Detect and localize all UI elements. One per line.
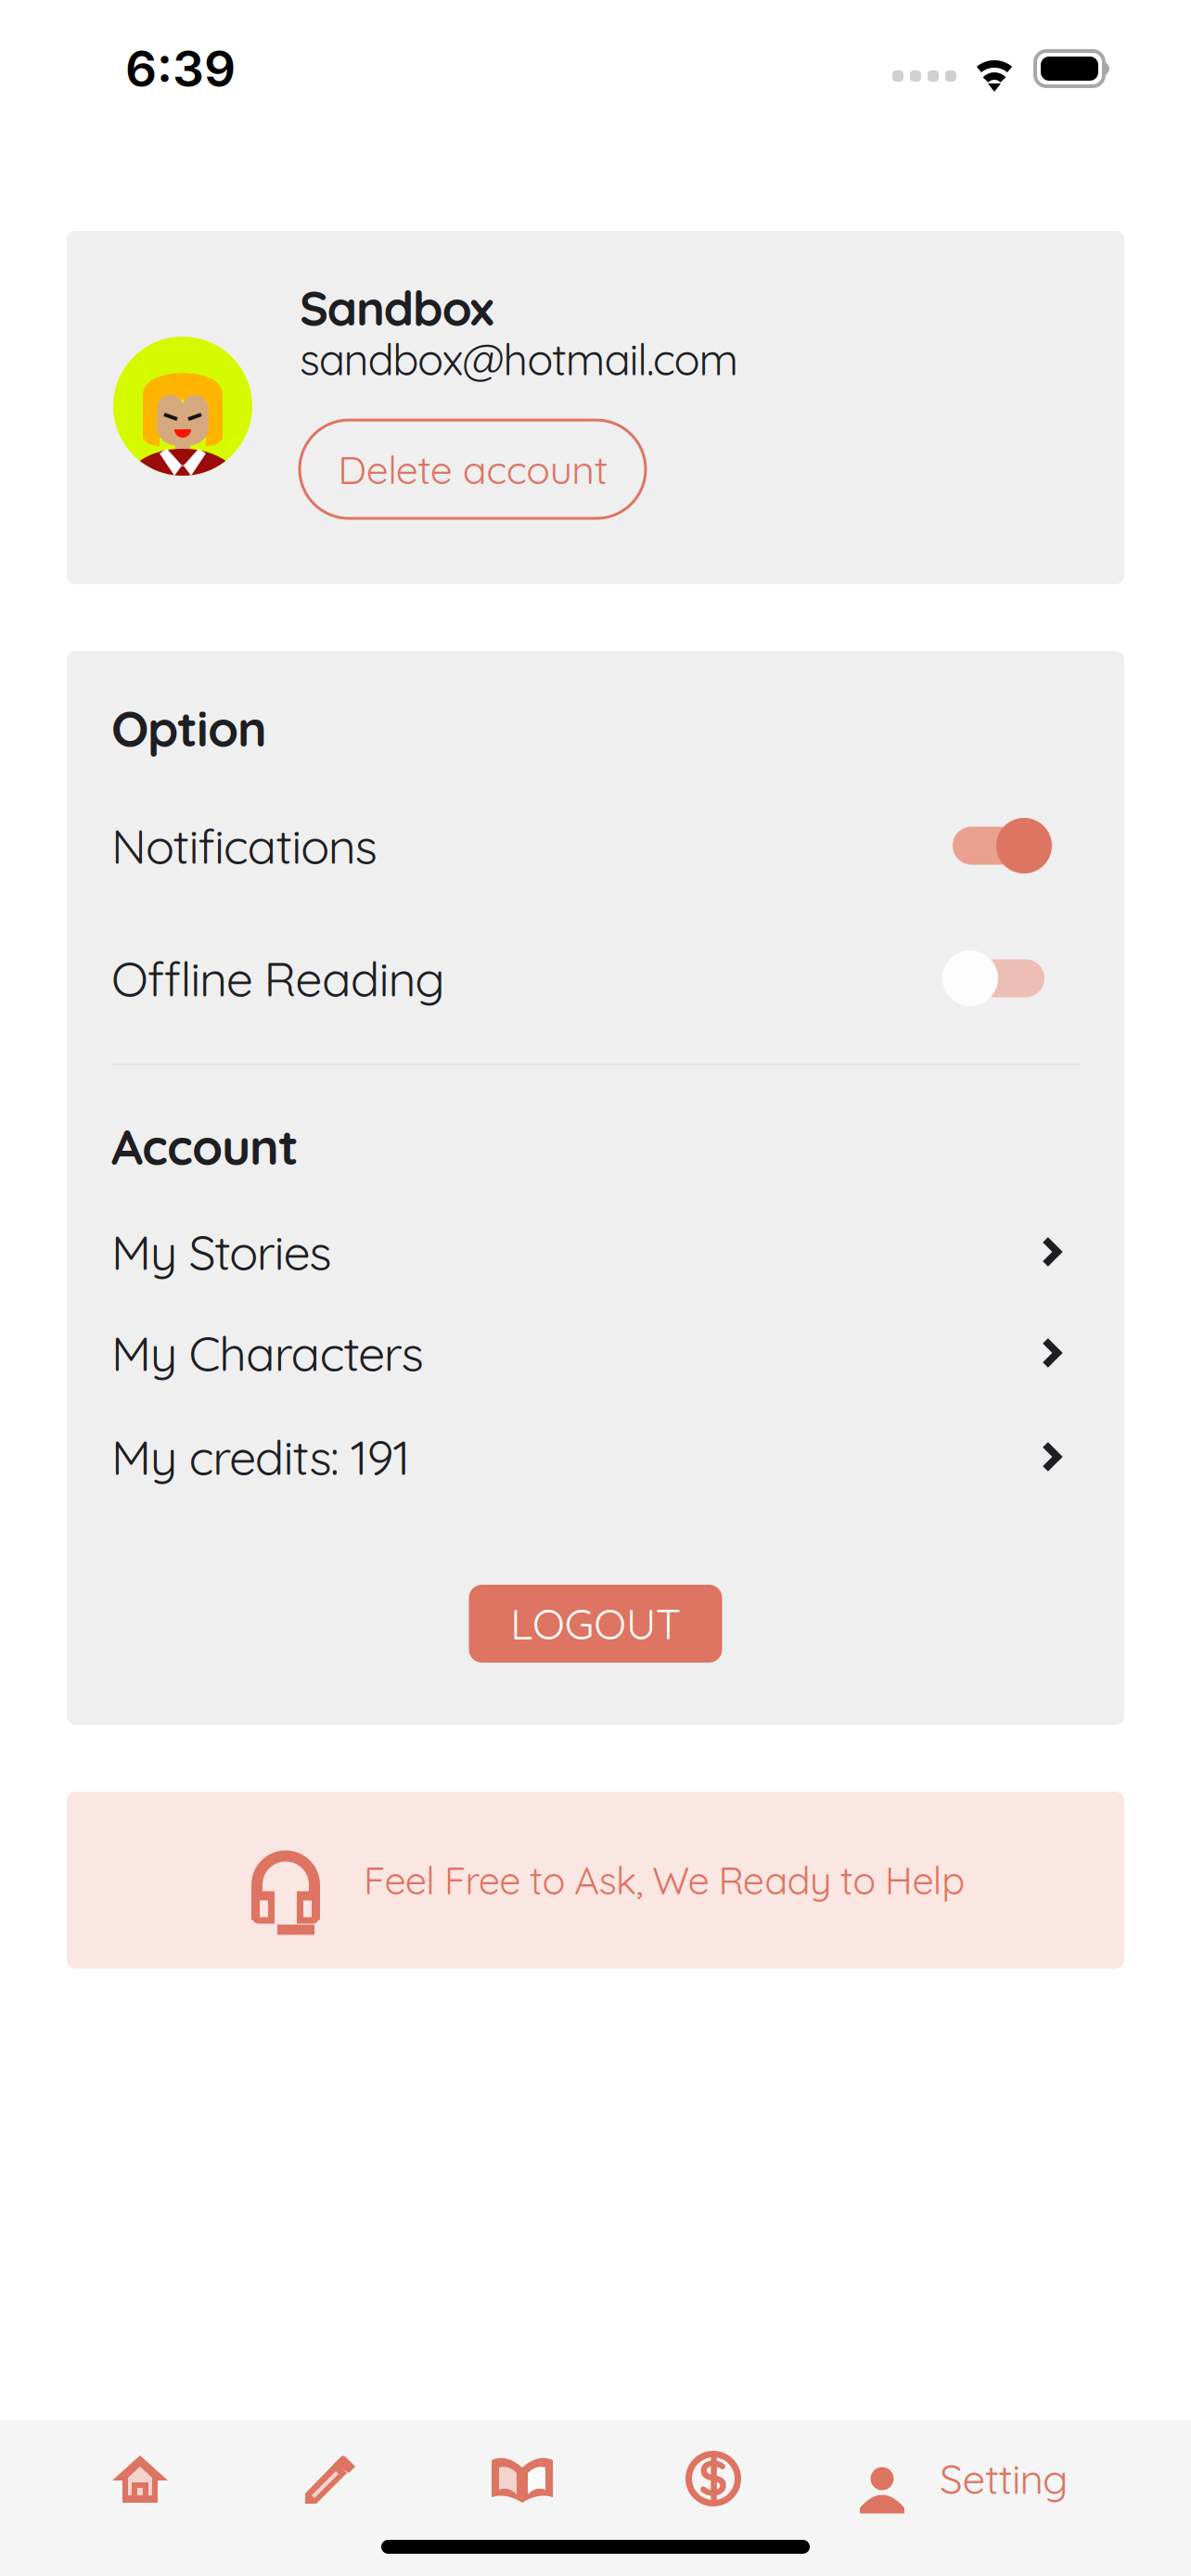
staticText: Delete account	[338, 444, 607, 494]
button[interactable]: My Stories	[111, 1228, 1080, 1276]
staticText: Setting	[940, 2453, 1068, 2504]
staticText: Account	[111, 1115, 299, 1177]
button[interactable]: Home	[45, 2428, 236, 2530]
button[interactable]: Offline Reading	[111, 949, 1080, 1008]
staticText: Option	[111, 697, 267, 759]
button[interactable]: Delete account	[300, 420, 646, 518]
staticText: $	[698, 2446, 728, 2508]
button[interactable]: My Characters	[111, 1329, 1080, 1377]
button[interactable]: Credits	[618, 2428, 809, 2530]
staticText: My credits: 191	[111, 1427, 410, 1487]
button[interactable]: Notifications	[111, 816, 1080, 875]
button[interactable]: Feel Free to Ask, We Ready to Help	[67, 1792, 1124, 1969]
staticText: Sandbox	[300, 277, 493, 338]
staticText: My Stories	[111, 1222, 331, 1282]
button[interactable]: My credits: 191	[111, 1433, 1080, 1481]
button[interactable]: LOGOUT	[469, 1585, 722, 1663]
staticText: Feel Free to Ask, We Ready to Help	[364, 1856, 965, 1904]
staticText: sandbox@hotmail.com	[300, 332, 739, 386]
staticText: LOGOUT	[510, 1597, 681, 1650]
button[interactable]: Write	[236, 2428, 427, 2530]
staticText: My Characters	[111, 1323, 424, 1383]
button[interactable]: Library	[427, 2428, 618, 2530]
staticText: Notifications	[111, 816, 377, 876]
staticText: 6:39	[125, 39, 236, 98]
button[interactable]: Setting	[809, 2428, 1121, 2530]
staticText: Offline Reading	[111, 948, 444, 1008]
